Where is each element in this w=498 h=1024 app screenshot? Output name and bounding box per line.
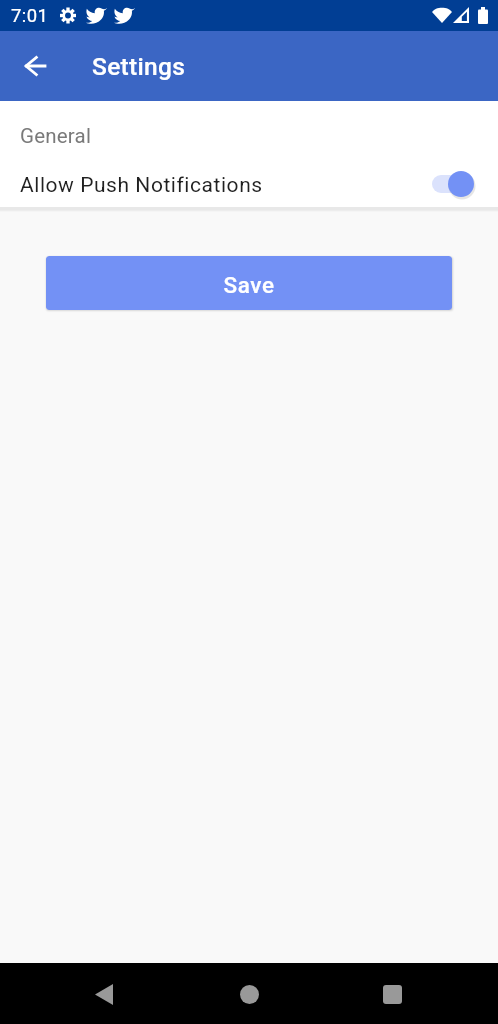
staticText: 7:01 xyxy=(11,5,49,27)
button[interactable]: Recent apps xyxy=(368,970,416,1018)
button[interactable]: Allow Push Notifications toggle xyxy=(432,169,474,199)
staticText: Save xyxy=(223,272,275,298)
button[interactable]: Home xyxy=(225,970,273,1018)
button[interactable]: Back xyxy=(80,970,128,1018)
button[interactable]: Allow Push Notifications xyxy=(0,164,498,207)
staticText: Settings xyxy=(92,52,186,81)
button[interactable]: Back xyxy=(11,42,59,90)
button[interactable]: Save xyxy=(46,256,452,310)
staticText: General xyxy=(20,124,92,148)
staticText: Allow Push Notifications xyxy=(20,173,432,198)
